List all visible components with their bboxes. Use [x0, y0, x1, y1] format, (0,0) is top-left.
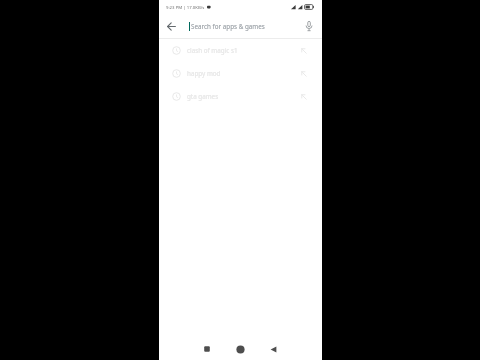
- staticText: gta games: [187, 92, 219, 101]
- button[interactable]: clash of magic s1: [159, 39, 322, 62]
- staticText: clash of magic s1: [187, 46, 238, 55]
- button[interactable]: [196, 338, 218, 360]
- staticText: 9:23 PM | 17.0KB/s: [166, 4, 205, 10]
- button[interactable]: happy mod: [159, 62, 322, 85]
- button[interactable]: [159, 14, 183, 38]
- button[interactable]: gta games: [159, 85, 322, 108]
- button[interactable]: [299, 16, 319, 36]
- button[interactable]: [262, 338, 284, 360]
- button[interactable]: [229, 338, 251, 360]
- staticText: happy mod: [187, 69, 221, 78]
- button[interactable]: Search for apps & games: [159, 14, 322, 38]
- staticText: Search for apps & games: [191, 22, 265, 31]
